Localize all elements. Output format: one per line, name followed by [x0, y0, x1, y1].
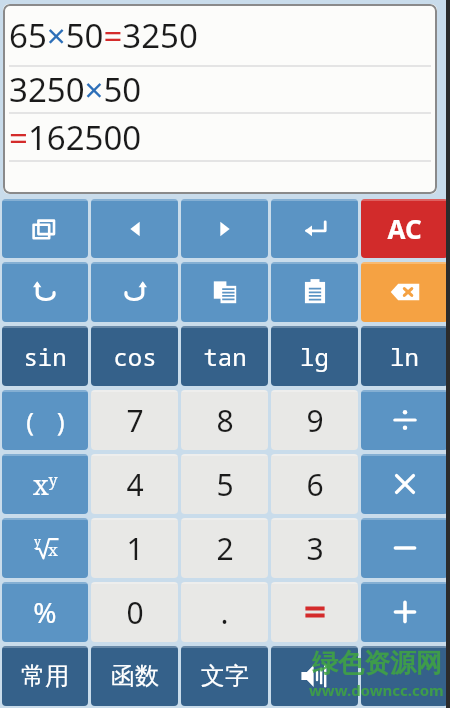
staticText: 9	[306, 400, 324, 441]
button[interactable]: 4	[91, 454, 178, 514]
button[interactable]: sin	[2, 326, 88, 386]
button[interactable]: 2	[181, 518, 268, 578]
staticText: ln	[390, 340, 419, 373]
other: Undo	[30, 277, 60, 307]
staticText: %	[33, 593, 57, 631]
button[interactable]	[361, 646, 448, 706]
button[interactable]: Multiply	[361, 454, 448, 514]
button[interactable]: 8	[181, 390, 268, 450]
staticText: 3	[306, 528, 324, 569]
button[interactable]: 函数	[91, 646, 178, 706]
staticText: y	[34, 533, 41, 549]
button[interactable]: 常用	[2, 646, 88, 706]
staticText: 绿色资源网	[312, 647, 442, 680]
button[interactable]: lg	[271, 326, 358, 386]
staticText: AC	[387, 211, 422, 246]
staticText: tan	[203, 340, 247, 373]
staticText: 函数	[111, 661, 159, 691]
other: Divide	[390, 405, 420, 435]
other: Move left	[122, 216, 148, 242]
staticText: 常用	[21, 661, 69, 691]
button[interactable]: Copy	[181, 262, 268, 322]
staticText: 8	[216, 400, 234, 441]
staticText: lg	[300, 340, 329, 373]
staticText: sin	[23, 340, 67, 373]
staticText: 1	[126, 528, 144, 569]
other: Paste	[301, 278, 329, 306]
button[interactable]: xy	[2, 454, 88, 514]
staticText: www.downcc.com	[309, 680, 444, 700]
button[interactable]: Windows	[2, 199, 88, 258]
staticText: x	[48, 538, 58, 561]
button[interactable]: Enter	[271, 199, 358, 258]
button[interactable]: Move left	[91, 199, 178, 258]
button[interactable]: Move right	[181, 199, 268, 258]
other: Windows	[30, 214, 60, 244]
staticText: 65×50=3250	[9, 13, 198, 58]
button[interactable]: 3	[271, 518, 358, 578]
button[interactable]: 文字	[181, 646, 268, 706]
staticText: 2	[216, 528, 234, 569]
button[interactable]: 6	[271, 454, 358, 514]
staticText: 4	[126, 464, 144, 505]
button[interactable]: 9	[271, 390, 358, 450]
staticText: cos	[113, 340, 157, 373]
button[interactable]: 5	[181, 454, 268, 514]
button[interactable]: 7	[91, 390, 178, 450]
staticText: 文字	[201, 661, 249, 691]
button[interactable]: Plus	[361, 582, 448, 642]
other: Minus	[390, 533, 420, 563]
staticText: xy	[33, 466, 58, 503]
button[interactable]: Backspace	[361, 262, 448, 322]
button[interactable]: 0	[91, 582, 178, 642]
button[interactable]: Undo	[2, 262, 88, 322]
button[interactable]: %	[2, 582, 88, 642]
button[interactable]: ( )	[2, 390, 88, 450]
staticText: 3250×50	[9, 67, 142, 112]
button[interactable]: .	[181, 582, 268, 642]
staticText: =162500	[9, 115, 142, 160]
staticText: 0	[126, 592, 144, 633]
other: Enter	[300, 214, 330, 244]
button[interactable]: Divide	[361, 390, 448, 450]
button[interactable]: Redo	[91, 262, 178, 322]
staticText: 5	[216, 464, 234, 505]
other: Root	[25, 528, 65, 568]
other: Move right	[212, 216, 238, 242]
button[interactable]: Minus	[361, 518, 448, 578]
other: Plus	[390, 597, 420, 627]
other: Backspace	[388, 275, 422, 309]
button[interactable]: Equals	[271, 582, 358, 642]
staticText: 7	[126, 400, 144, 441]
button[interactable]: cos	[91, 326, 178, 386]
staticText: .	[220, 592, 229, 633]
button[interactable]: Sound	[271, 646, 358, 706]
button[interactable]: Paste	[271, 262, 358, 322]
staticText: ( )	[22, 403, 69, 438]
button[interactable]: tan	[181, 326, 268, 386]
other: Sound	[298, 659, 332, 693]
button[interactable]: ln	[361, 326, 448, 386]
button[interactable]: AC	[361, 199, 448, 258]
other: Multiply	[391, 470, 419, 498]
button[interactable]: 1	[91, 518, 178, 578]
other: Equals	[300, 597, 330, 627]
other: Redo	[120, 277, 150, 307]
other: Copy	[211, 278, 239, 306]
button[interactable]: Root	[2, 518, 88, 578]
staticText: 6	[306, 464, 324, 505]
